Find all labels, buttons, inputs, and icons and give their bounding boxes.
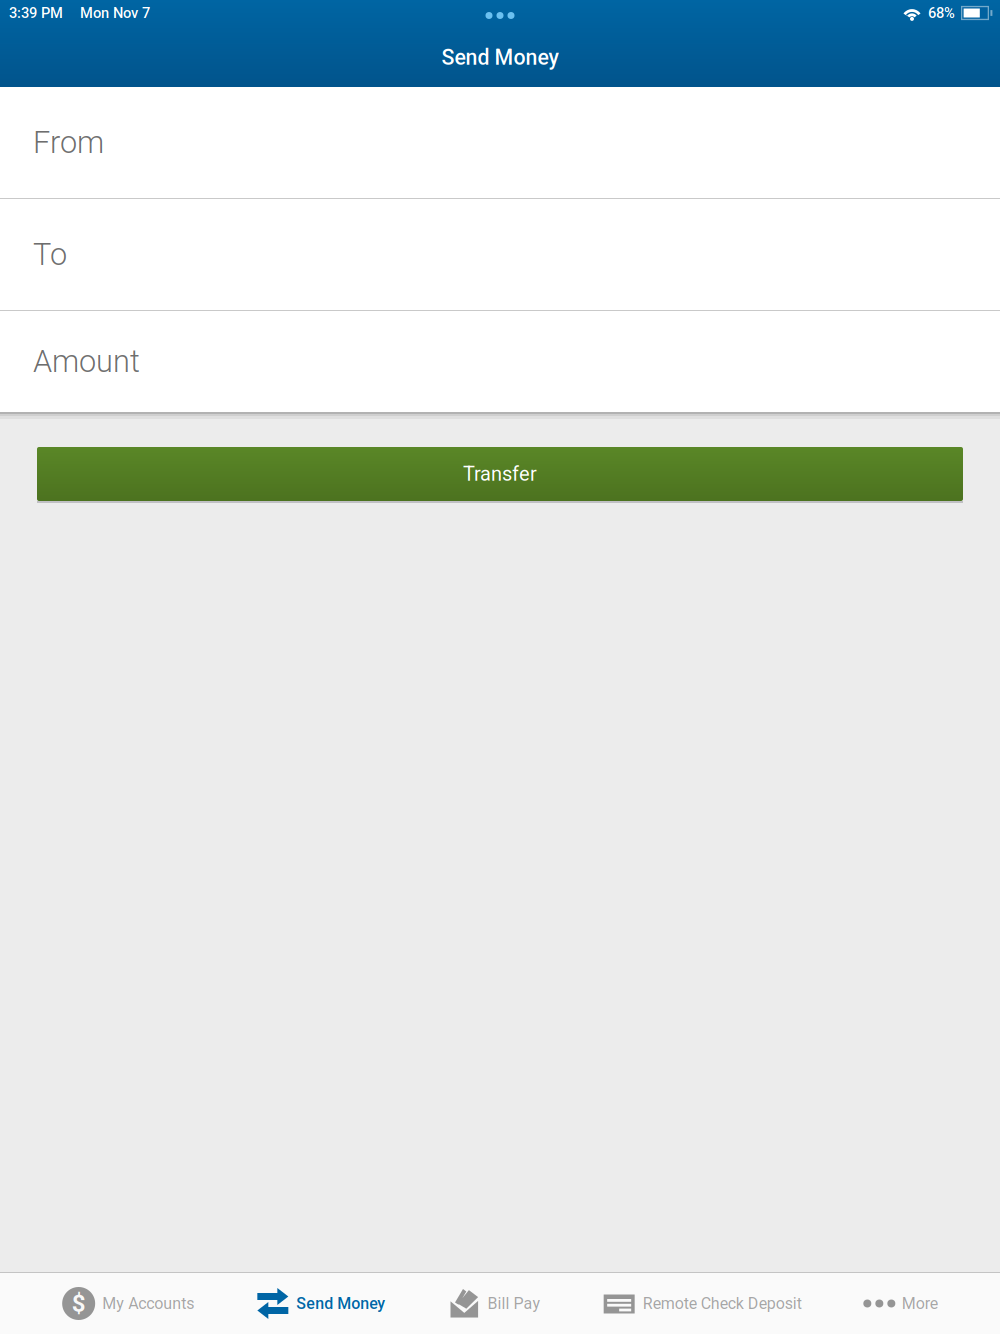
button[interactable]: Send Money <box>256 1273 385 1334</box>
staticText: Send Money <box>296 1294 385 1313</box>
button[interactable]: Remote Check Deposit <box>603 1273 802 1334</box>
staticText: My Accounts <box>102 1294 194 1313</box>
staticText: Bill Pay <box>487 1294 540 1313</box>
staticText: Send Money <box>441 45 558 70</box>
staticText: Amount <box>33 343 140 379</box>
button[interactable]: To <box>0 199 1000 310</box>
button[interactable]: $ <box>62 1273 194 1334</box>
button[interactable]: From <box>0 87 1000 198</box>
staticText: More <box>902 1294 938 1313</box>
button[interactable]: More <box>864 1273 938 1334</box>
staticText: Remote Check Deposit <box>643 1294 802 1313</box>
staticText: 68% <box>928 4 955 22</box>
staticText: 3:39 PM <box>9 4 63 22</box>
staticText: To <box>33 236 67 272</box>
button[interactable]: Bill Pay <box>447 1273 540 1334</box>
staticText: $ <box>72 1289 86 1317</box>
button[interactable]: Transfer <box>37 447 963 501</box>
staticText: Mon Nov 7 <box>80 4 150 22</box>
staticText: From <box>33 124 104 160</box>
button[interactable]: Amount <box>0 311 1000 412</box>
staticText: Transfer <box>463 462 537 486</box>
